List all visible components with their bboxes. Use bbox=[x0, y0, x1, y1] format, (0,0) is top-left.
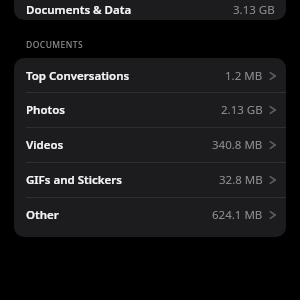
button[interactable]: Other bbox=[14, 198, 286, 232]
staticText: 32.8 MB bbox=[219, 172, 263, 188]
button[interactable]: Videos bbox=[14, 128, 286, 162]
staticText: 3.13 GB bbox=[233, 2, 275, 18]
staticText: 340.8 MB bbox=[212, 137, 263, 153]
staticText: DOCUMENTS bbox=[26, 39, 84, 51]
staticText: 1.2 MB bbox=[225, 68, 263, 84]
staticText: 624.1 MB bbox=[212, 207, 263, 223]
button[interactable]: Photos bbox=[14, 93, 286, 127]
staticText: 2.13 GB bbox=[221, 102, 263, 118]
staticText: GIFs and Stickers bbox=[26, 172, 122, 188]
button[interactable]: Documents & Data bbox=[14, 0, 286, 20]
staticText: Photos bbox=[26, 102, 65, 118]
button[interactable]: Top Conversations bbox=[14, 60, 286, 92]
staticText: Other bbox=[26, 207, 59, 223]
staticText: Top Conversations bbox=[26, 68, 130, 84]
staticText: Documents & Data bbox=[26, 2, 132, 18]
staticText: Videos bbox=[26, 137, 64, 153]
button[interactable]: GIFs and Stickers bbox=[14, 163, 286, 197]
